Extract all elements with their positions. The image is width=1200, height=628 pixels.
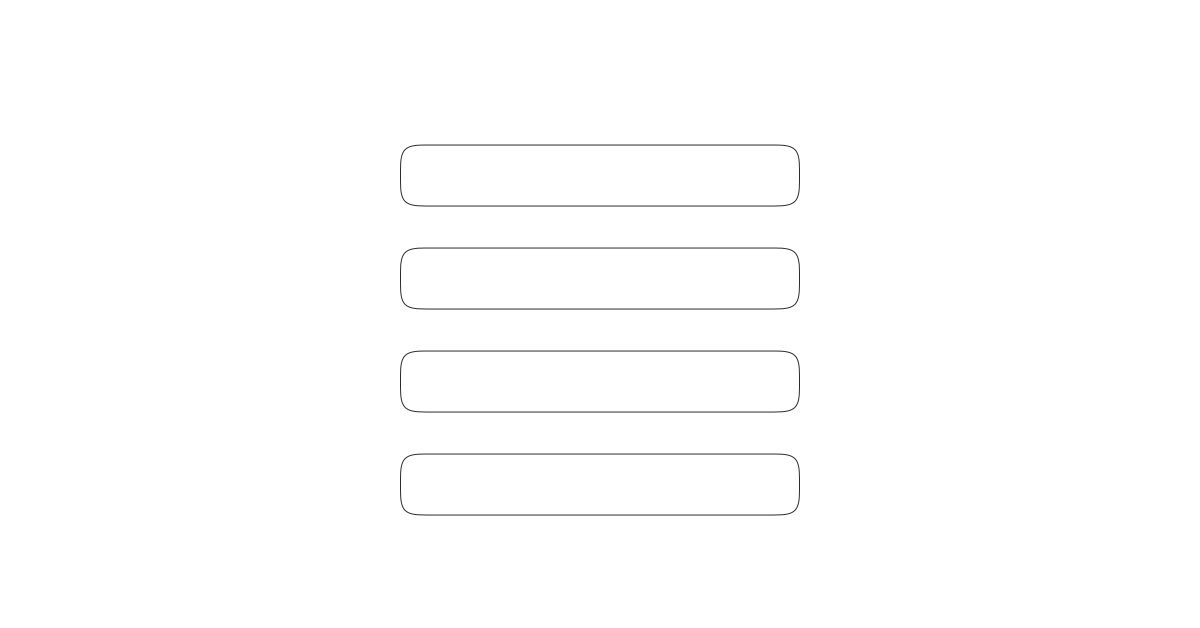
button[interactable]: Item 2 <box>400 248 799 309</box>
button[interactable]: Item 3 <box>400 351 799 412</box>
button[interactable]: Item 4 <box>400 454 799 515</box>
button[interactable]: Item 1 <box>400 145 799 206</box>
